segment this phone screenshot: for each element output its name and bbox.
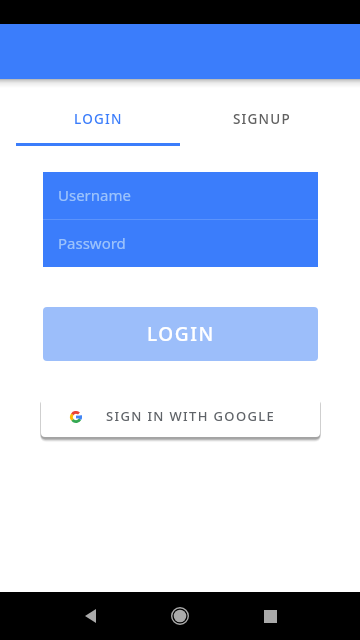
button[interactable]: LOGIN — [16, 79, 180, 146]
staticText: SIGNUP — [233, 110, 291, 128]
button[interactable]: Username — [43, 172, 318, 219]
button[interactable]: Back — [66, 592, 114, 640]
staticText: Password — [58, 233, 126, 253]
button[interactable]: Recent apps — [246, 592, 294, 640]
button[interactable]: Password — [43, 220, 318, 267]
staticText: SIGN IN WITH GOOGLE — [106, 407, 276, 425]
button[interactable]: LOGIN — [43, 307, 318, 361]
staticText: LOGIN — [147, 321, 215, 347]
button[interactable]: SIGNUP — [180, 79, 344, 146]
staticText: Username — [58, 185, 131, 205]
button[interactable]: Home — [156, 592, 204, 640]
button[interactable]: SIGN IN WITH GOOGLE — [41, 397, 320, 437]
staticText: LOGIN — [74, 110, 123, 128]
